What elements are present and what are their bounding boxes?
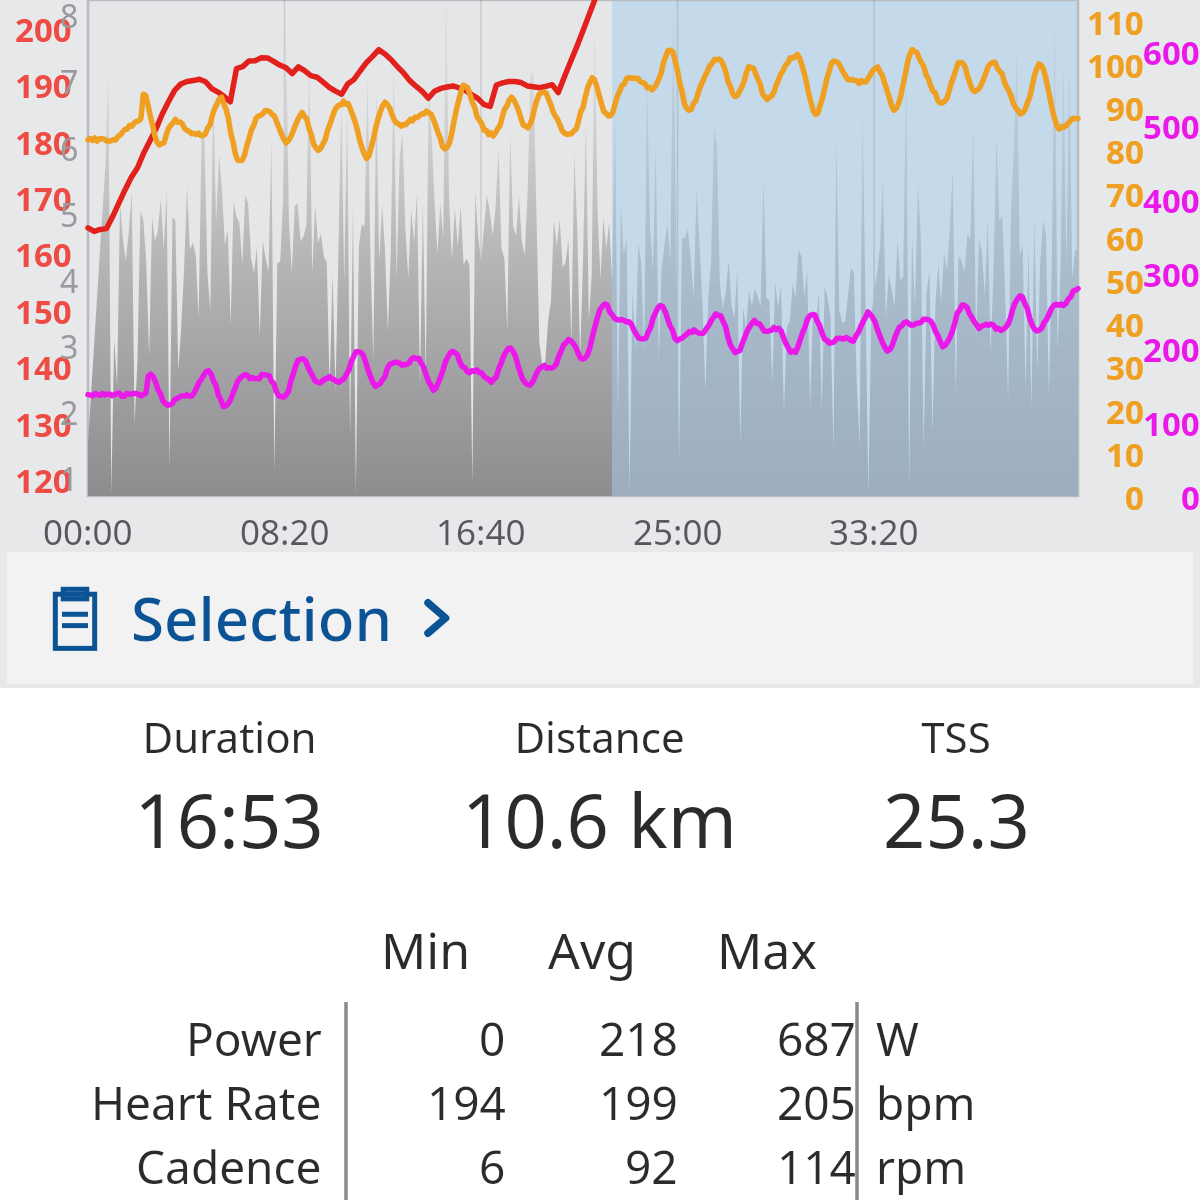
staticText: 70 bbox=[1106, 172, 1144, 217]
staticText: 218 bbox=[599, 1007, 678, 1070]
staticText: 6 bbox=[60, 127, 79, 171]
staticText: 190 bbox=[15, 63, 72, 108]
staticText: Cadence bbox=[136, 1135, 322, 1198]
staticText: 25.3 bbox=[883, 769, 1030, 870]
staticText: 200 bbox=[15, 7, 72, 52]
staticText: bpm bbox=[876, 1071, 976, 1134]
staticText: 200 bbox=[1143, 327, 1200, 372]
staticText: 8 bbox=[60, 0, 79, 38]
staticText: 0 bbox=[1125, 475, 1144, 520]
staticText: 100 bbox=[1143, 401, 1200, 446]
staticText: 205 bbox=[777, 1071, 856, 1134]
staticText: 40 bbox=[1106, 302, 1144, 347]
staticText: Power bbox=[186, 1007, 322, 1070]
staticText: 10.6 km bbox=[462, 769, 737, 870]
staticText: Selection bbox=[131, 577, 392, 659]
staticText: 140 bbox=[15, 345, 72, 390]
staticText: 00:00 bbox=[43, 508, 133, 556]
staticText: 170 bbox=[15, 176, 72, 221]
staticText: 160 bbox=[15, 232, 72, 277]
staticText: TSS bbox=[921, 708, 991, 765]
staticText: 7 bbox=[60, 60, 79, 104]
staticText: 100 bbox=[1087, 43, 1144, 88]
staticText: Min bbox=[381, 916, 471, 984]
staticText: 180 bbox=[15, 120, 72, 165]
staticText: 10 bbox=[1106, 432, 1144, 477]
staticText: Duration bbox=[142, 708, 317, 765]
staticText: 25:00 bbox=[633, 508, 723, 556]
staticText: 194 bbox=[427, 1071, 506, 1134]
staticText: 3 bbox=[60, 325, 79, 369]
staticText: W bbox=[876, 1007, 919, 1070]
staticText: Heart Rate bbox=[91, 1071, 322, 1134]
staticText: 08:20 bbox=[240, 508, 330, 556]
staticText: 400 bbox=[1143, 178, 1200, 223]
staticText: 114 bbox=[777, 1135, 856, 1198]
staticText: 4 bbox=[60, 259, 79, 303]
staticText: 6 bbox=[479, 1135, 506, 1198]
staticText: 80 bbox=[1106, 129, 1144, 174]
staticText: 600 bbox=[1143, 30, 1200, 75]
staticText: 0 bbox=[479, 1007, 506, 1070]
staticText: 110 bbox=[1087, 0, 1144, 45]
staticText: 16:53 bbox=[134, 769, 324, 870]
staticText: 0 bbox=[1181, 475, 1200, 520]
staticText: Distance bbox=[514, 708, 685, 765]
staticText: 30 bbox=[1106, 345, 1144, 390]
staticText: 1 bbox=[60, 457, 79, 501]
staticText: 16:40 bbox=[436, 508, 526, 556]
staticText: 20 bbox=[1106, 389, 1144, 434]
staticText: 150 bbox=[15, 289, 72, 334]
button[interactable]: Selection details bbox=[7, 552, 1193, 684]
staticText: 500 bbox=[1143, 104, 1200, 149]
staticText: 92 bbox=[625, 1135, 678, 1198]
staticText: 33:20 bbox=[829, 508, 919, 556]
staticText: 120 bbox=[15, 458, 72, 503]
staticText: rpm bbox=[876, 1135, 967, 1198]
other: Selection details bbox=[51, 585, 99, 651]
staticText: 60 bbox=[1106, 216, 1144, 261]
staticText: 130 bbox=[15, 402, 72, 447]
staticText: Avg bbox=[548, 916, 637, 984]
staticText: 300 bbox=[1143, 252, 1200, 297]
staticText: 2 bbox=[60, 391, 79, 435]
staticText: 199 bbox=[599, 1071, 678, 1134]
staticText: 687 bbox=[777, 1007, 856, 1070]
staticText: 50 bbox=[1106, 259, 1144, 304]
staticText: Max bbox=[717, 916, 817, 984]
staticText: 90 bbox=[1106, 86, 1144, 131]
staticText: 5 bbox=[60, 193, 79, 237]
